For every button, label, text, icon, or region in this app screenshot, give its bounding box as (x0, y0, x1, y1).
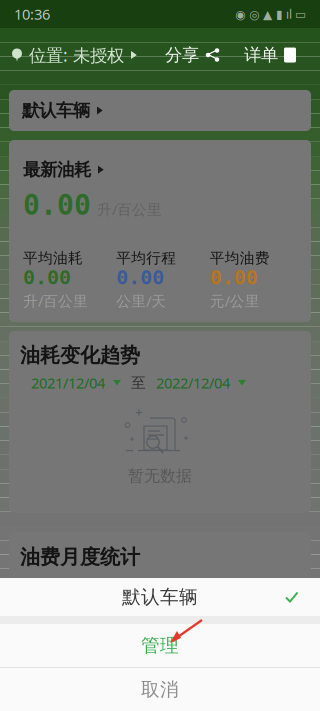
staticText: 0.00 (23, 189, 91, 221)
staticText: 10:36 (14, 4, 50, 24)
button[interactable]: 取消 (0, 668, 320, 711)
staticText: 平均行程 (116, 249, 176, 267)
staticText: 升/百公里 (23, 291, 88, 311)
staticText: 0.00 (116, 266, 164, 289)
staticText: 暂无数据 (128, 466, 192, 486)
button[interactable]: 2021/12/04 (31, 373, 121, 393)
staticText: 0.00 (210, 266, 258, 289)
staticText: ◉ ◎ ▲ ▮ ıl ▭ (235, 6, 306, 22)
staticText: 默认车辆 (22, 100, 90, 121)
button[interactable]: 2022/12/04 (156, 373, 246, 393)
staticText: 位置: 未授权 (29, 43, 124, 66)
staticText: 取消 (141, 678, 179, 701)
staticText: 油耗变化趋势 (20, 343, 140, 368)
staticText: 2022/12/04 (156, 373, 230, 393)
staticText: 至 (131, 374, 146, 392)
staticText: 升/百公里 (97, 200, 162, 219)
button[interactable]: 最新油耗 (9, 140, 311, 180)
staticText: 平均油费 (210, 249, 270, 267)
staticText: 油费月度统计 (20, 545, 140, 569)
staticText: 管理 (141, 634, 179, 657)
button[interactable]: 详单 (239, 28, 301, 82)
button[interactable]: 管理 (0, 624, 320, 667)
staticText: 平均油耗 (23, 249, 83, 267)
button[interactable]: 位置: 未授权 (0, 28, 147, 82)
staticText: 详单 (244, 44, 278, 66)
staticText: 默认车辆 (122, 585, 198, 608)
staticText: 0.00 (23, 266, 71, 289)
staticText: 最新油耗 (23, 159, 91, 180)
button[interactable]: 分享 (160, 28, 225, 82)
staticText: 公里/天 (116, 291, 166, 311)
staticText: 元/公里 (210, 291, 260, 311)
staticText: 分享 (165, 44, 199, 66)
button[interactable]: 默认车辆 (0, 578, 320, 616)
button[interactable]: 默认车辆 (9, 90, 311, 131)
staticText: 2021/12/04 (31, 373, 105, 393)
